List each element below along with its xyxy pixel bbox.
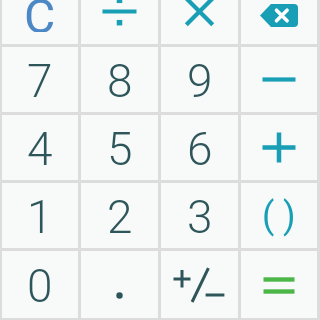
staticText: ) — [283, 195, 296, 237]
button[interactable] — [241, 47, 317, 112]
staticText: 0 — [27, 259, 53, 313]
button[interactable]: 5 — [81, 115, 158, 180]
button[interactable]: 2 — [81, 183, 158, 248]
staticText: 4 — [27, 122, 53, 176]
staticText: 1 — [27, 190, 53, 244]
button[interactable]: 0 — [2, 251, 78, 318]
button[interactable] — [161, 0, 238, 44]
staticText: ( — [262, 195, 275, 237]
button[interactable] — [241, 251, 317, 318]
button[interactable]: 6 — [161, 115, 238, 180]
button[interactable] — [81, 251, 158, 318]
staticText: 2 — [107, 190, 133, 244]
button[interactable]: ( — [241, 183, 317, 248]
button[interactable] — [161, 251, 238, 318]
staticText: 3 — [187, 190, 213, 244]
button[interactable]: 1 — [2, 183, 78, 248]
staticText: 9 — [187, 54, 213, 108]
button[interactable]: 7 — [2, 47, 78, 112]
staticText: 6 — [187, 122, 213, 176]
button[interactable]: 4 — [2, 115, 78, 180]
staticText: 7 — [27, 54, 53, 108]
button[interactable]: 9 — [161, 47, 238, 112]
button[interactable] — [241, 115, 317, 180]
button[interactable]: 8 — [81, 47, 158, 112]
staticText: 8 — [107, 54, 133, 108]
button[interactable] — [241, 0, 317, 44]
button[interactable] — [81, 0, 158, 44]
button[interactable]: 3 — [161, 183, 238, 248]
staticText: 5 — [107, 122, 133, 176]
staticText: C — [24, 0, 56, 32]
button[interactable]: C — [2, 0, 78, 44]
